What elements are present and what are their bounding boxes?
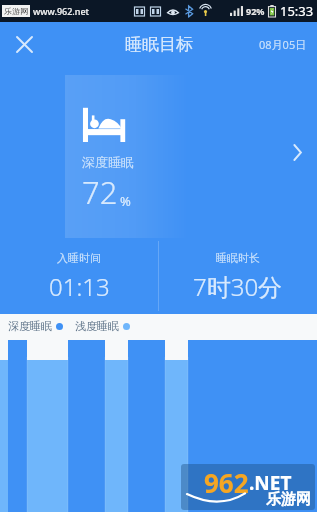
staticText: 01:13 [49, 270, 110, 303]
staticText: 92% [246, 5, 265, 17]
staticText: 08月05日 [259, 37, 307, 52]
staticText: % [120, 192, 131, 210]
button[interactable]: 睡眠时长 [159, 238, 317, 314]
staticText: 乐游网 [266, 490, 311, 509]
staticText: www.962.net [33, 5, 90, 17]
staticText: 入睡时间 [57, 251, 101, 265]
staticText: 睡眠时长 [216, 251, 260, 265]
button[interactable]: 入睡时间 [0, 238, 158, 314]
staticText: 962 [204, 465, 249, 500]
button[interactable]: Close [8, 28, 40, 60]
staticText: 深度睡眠 [8, 319, 52, 333]
staticText: 乐游网 [4, 6, 28, 16]
staticText: 浅度睡眠 [75, 319, 119, 333]
staticText: 72 [82, 171, 118, 213]
staticText: 睡眠目标 [125, 34, 193, 55]
staticText: 深度睡眠 [82, 154, 134, 170]
button[interactable]: Details [283, 138, 311, 166]
staticText: 7时30分 [193, 270, 283, 303]
staticText: 15:33 [280, 2, 314, 20]
button[interactable]: 深度睡眠 [0, 66, 317, 238]
staticText: .NET [249, 470, 292, 496]
